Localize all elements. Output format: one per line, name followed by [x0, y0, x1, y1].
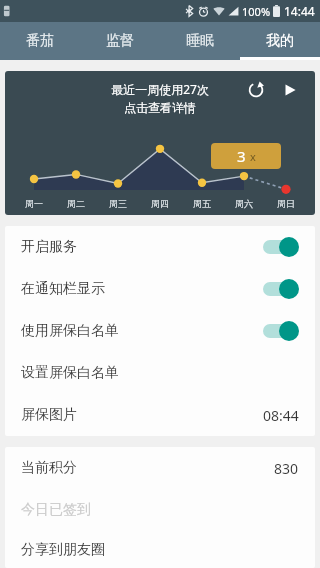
staticText: 14:44: [284, 3, 315, 19]
button[interactable]: Play: [277, 77, 303, 103]
button[interactable]: 设置屏保白名单: [5, 352, 315, 394]
button[interactable]: 今日已签到: [5, 489, 315, 531]
button[interactable]: 番茄: [0, 22, 80, 60]
staticText: 番茄: [26, 32, 54, 50]
staticText: 当前积分: [21, 459, 77, 477]
button[interactable]: 我的: [240, 22, 320, 60]
staticText: 使用屏保白名单: [21, 322, 119, 340]
staticText: 设置屏保白名单: [21, 364, 119, 382]
button[interactable]: Refresh: [243, 77, 269, 103]
button[interactable]: 开启服务: [5, 226, 315, 268]
staticText: 监督: [106, 32, 134, 50]
staticText: 3: [237, 146, 246, 166]
staticText: 开启服务: [21, 238, 77, 256]
staticText: 830: [274, 459, 299, 478]
staticText: 周六: [235, 198, 253, 209]
button[interactable]: 屏保图片: [5, 394, 315, 436]
staticText: 屏保图片: [21, 406, 77, 424]
staticText: 最近一周使用27次: [111, 81, 209, 97]
staticText: x: [250, 149, 256, 164]
button[interactable]: 在通知栏显示: [5, 268, 315, 310]
staticText: 周三: [109, 198, 127, 209]
staticText: 周四: [151, 198, 169, 209]
button[interactable]: 监督: [80, 22, 160, 60]
staticText: 周五: [193, 198, 211, 209]
staticText: 分享到朋友圈: [21, 541, 105, 559]
staticText: 08:44: [263, 406, 299, 425]
staticText: 在通知栏显示: [21, 280, 105, 298]
button[interactable]: 分享到朋友圈: [5, 531, 315, 568]
staticText: 我的: [266, 32, 294, 50]
staticText: 100%: [242, 4, 271, 19]
staticText: 周二: [67, 198, 85, 209]
button[interactable]: 当前积分: [5, 447, 315, 489]
staticText: 周一: [25, 198, 43, 209]
staticText: 周日: [277, 198, 295, 209]
staticText: 睡眠: [186, 32, 214, 50]
button[interactable]: 使用屏保白名单: [5, 310, 315, 352]
staticText: 点击查看详情: [124, 100, 196, 115]
button[interactable]: 睡眠: [160, 22, 240, 60]
button[interactable]: 最近一周使用27次: [5, 71, 315, 215]
button[interactable]: 3: [211, 143, 281, 169]
staticText: 今日已签到: [21, 501, 91, 519]
